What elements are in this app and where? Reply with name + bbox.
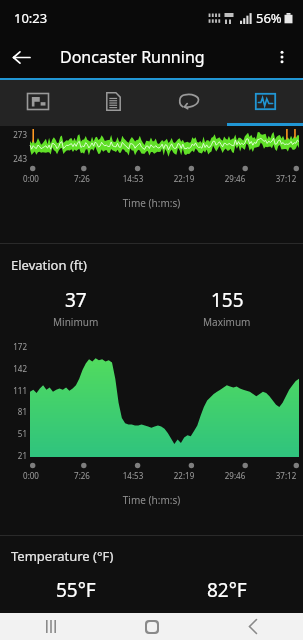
staticText: 7:26: [69, 173, 95, 184]
staticText: 37: [65, 287, 87, 313]
button[interactable]: 273: [0, 126, 303, 243]
button[interactable]: Map: [0, 80, 75, 126]
staticText: Time (h:m:s): [0, 196, 303, 210]
staticText: 172: [0, 341, 27, 352]
staticText: 37:12: [273, 173, 299, 184]
staticText: 22:19: [171, 470, 197, 481]
staticText: Maximum: [203, 315, 251, 329]
button[interactable]: Back: [0, 36, 42, 78]
staticText: 7:26: [69, 470, 95, 481]
staticText: 21: [0, 450, 27, 461]
staticText: 0:00: [18, 470, 44, 481]
staticText: 81: [0, 406, 27, 417]
staticText: 14:53: [120, 173, 146, 184]
staticText: 10:23: [14, 9, 48, 27]
staticText: 0:00: [18, 173, 44, 184]
button[interactable]: Back: [202, 613, 303, 640]
staticText: Doncaster Running: [60, 46, 205, 68]
button[interactable]: Details: [75, 80, 151, 126]
staticText: 155: [211, 287, 244, 313]
staticText: 273: [13, 129, 27, 140]
staticText: 142: [0, 363, 27, 374]
staticText: 243: [13, 153, 27, 164]
staticText: 22:19: [171, 173, 197, 184]
button[interactable]: Elevation (ft): [0, 244, 303, 535]
button[interactable]: Charts: [227, 80, 303, 126]
staticText: 37:12: [273, 470, 299, 481]
staticText: Minimum: [53, 315, 99, 329]
staticText: 111: [0, 385, 27, 396]
button[interactable]: Home: [101, 613, 202, 640]
staticText: Time (h:m:s): [0, 493, 303, 507]
staticText: 29:46: [222, 173, 248, 184]
staticText: 51: [0, 428, 27, 439]
button[interactable]: Laps: [151, 80, 227, 126]
staticText: Elevation (ft): [11, 256, 87, 274]
button[interactable]: More options: [261, 36, 303, 78]
button[interactable]: Temperature (°F): [0, 536, 303, 613]
staticText: 29:46: [222, 470, 248, 481]
staticText: Temperature (°F): [11, 547, 114, 565]
staticText: 56%: [256, 9, 282, 27]
staticText: 14:53: [120, 470, 146, 481]
staticText: 55°F: [56, 577, 96, 603]
button[interactable]: Recent apps: [0, 613, 101, 640]
staticText: 82°F: [207, 577, 247, 603]
